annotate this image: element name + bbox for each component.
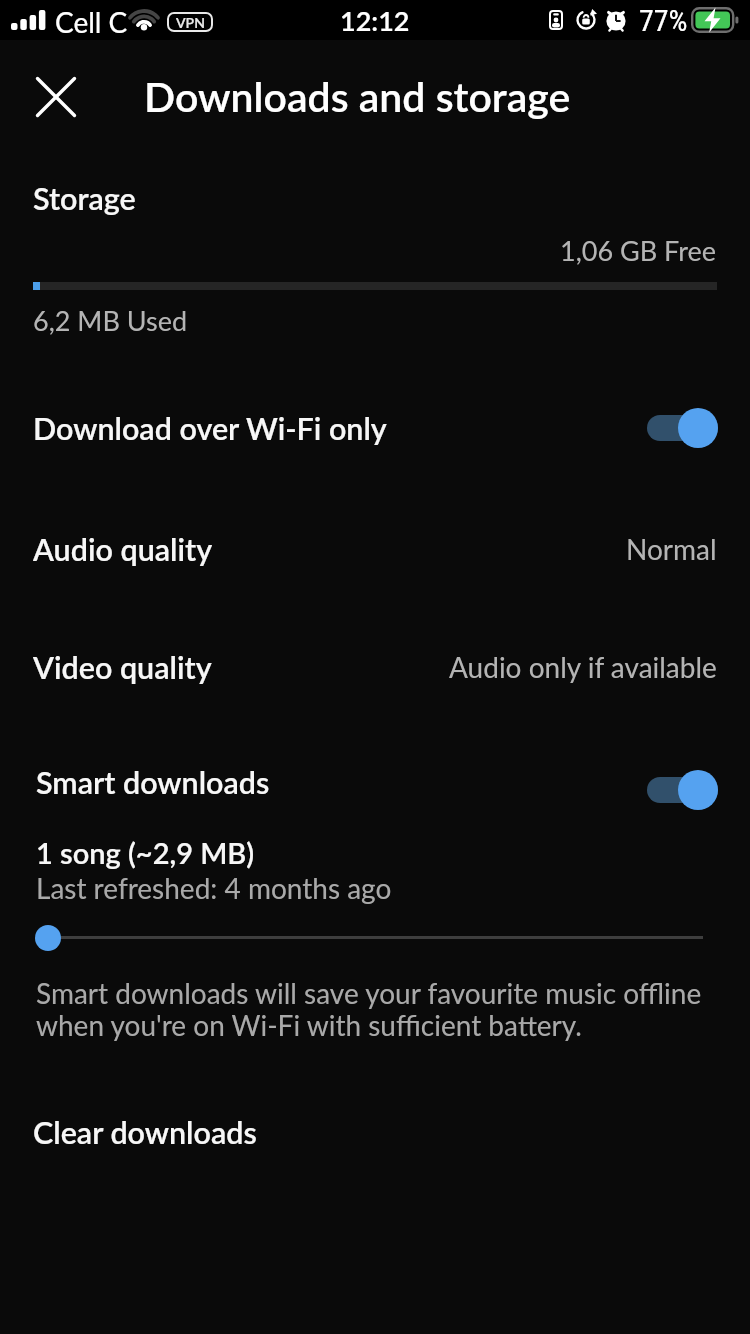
- staticText: VPN: [176, 14, 205, 31]
- button[interactable]: Audio quality: [0, 529, 750, 569]
- button[interactable]: Smart downloads: [0, 762, 750, 802]
- button[interactable]: [647, 408, 718, 448]
- staticText: 6,2 MB Used: [33, 304, 188, 336]
- button[interactable]: Clear downloads: [0, 1112, 750, 1152]
- staticText: Audio only if available: [449, 650, 717, 684]
- button[interactable]: [30, 71, 82, 123]
- staticText: Video quality: [33, 649, 212, 686]
- staticText: Download over Wi-Fi only: [33, 410, 387, 447]
- staticText: Last refreshed: 4 months ago: [36, 871, 392, 905]
- staticText: Storage: [33, 180, 136, 217]
- button[interactable]: [25, 915, 715, 961]
- staticText: Clear downloads: [33, 1114, 257, 1151]
- button[interactable]: Video quality: [0, 647, 750, 687]
- staticText: Smart downloads: [36, 764, 270, 801]
- staticText: Downloads and storage: [144, 72, 571, 121]
- staticText: 1 song (~2,9 MB): [36, 835, 255, 870]
- button[interactable]: Storage: [0, 178, 750, 218]
- staticText: 1,06 GB Free: [560, 234, 717, 266]
- staticText: Cell C: [55, 5, 128, 39]
- staticText: 12:12: [340, 4, 410, 36]
- staticText: 77%: [639, 3, 688, 37]
- staticText: Normal: [626, 532, 717, 566]
- staticText: Audio quality: [33, 531, 213, 568]
- button[interactable]: [647, 770, 718, 810]
- button[interactable]: Download over Wi-Fi only: [0, 408, 750, 448]
- staticText: Smart downloads will save your favourite…: [36, 976, 702, 1042]
